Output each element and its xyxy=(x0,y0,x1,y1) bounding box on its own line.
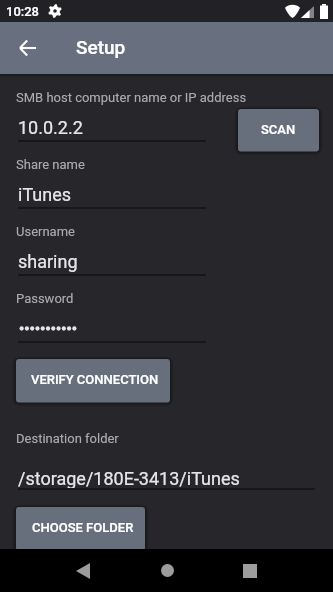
button[interactable]: CHOOSE FOLDER xyxy=(12,502,149,553)
staticText: CHOOSE FOLDER xyxy=(32,520,134,535)
staticText: 10.0.2.2 xyxy=(18,117,83,138)
button[interactable]: Back xyxy=(61,549,105,592)
staticText: SMB host computer name or IP address xyxy=(16,90,247,105)
staticText: SCAN xyxy=(261,122,296,137)
staticText: VERIFY CONNECTION xyxy=(31,372,159,387)
button[interactable]: VERIFY CONNECTION xyxy=(12,354,174,405)
button[interactable]: Home xyxy=(145,549,189,592)
staticText: sharing xyxy=(18,251,78,272)
staticText: Destination folder xyxy=(16,431,119,446)
staticText: iTunes xyxy=(18,184,71,205)
staticText: 10:28 xyxy=(6,4,40,19)
button[interactable]: SCAN xyxy=(234,104,323,154)
staticText: Share name xyxy=(16,157,85,172)
staticText: Setup xyxy=(76,36,126,58)
staticText: Password xyxy=(16,291,74,306)
staticText: /storage/180E-3413/iTunes xyxy=(18,468,240,489)
button[interactable]: Recent apps xyxy=(228,549,272,592)
staticText: Username xyxy=(16,224,75,239)
button[interactable]: Navigate up xyxy=(5,26,49,70)
